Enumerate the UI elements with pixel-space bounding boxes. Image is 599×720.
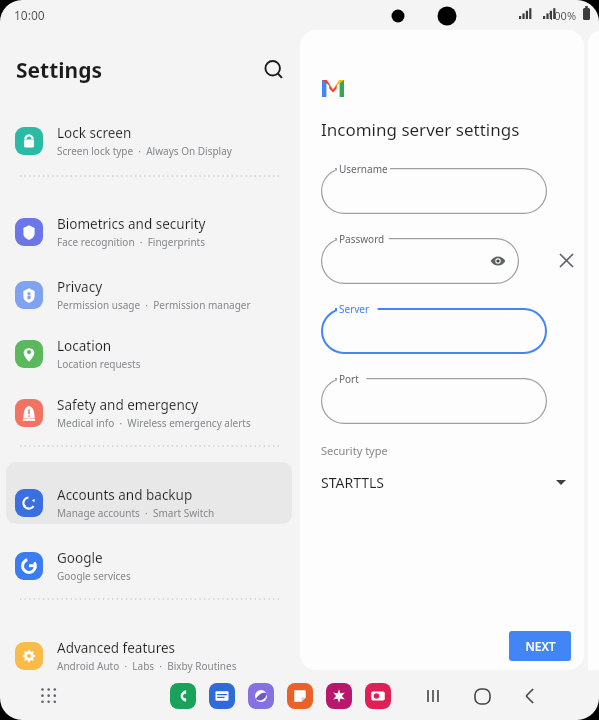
button[interactable]: Back <box>518 684 542 708</box>
button[interactable]: phone <box>170 683 196 709</box>
button[interactable]: Clear password <box>552 246 580 274</box>
staticText: NEXT <box>525 638 556 654</box>
staticText: Medical info · Wireless emergency alerts <box>57 416 251 430</box>
button[interactable]: Advanced features <box>0 625 300 687</box>
button[interactable]: Privacy <box>0 264 300 326</box>
staticText: Incoming server settings <box>321 118 520 141</box>
button[interactable]: net <box>248 683 274 709</box>
button[interactable]: Port <box>321 378 547 424</box>
button[interactable]: cam <box>365 683 391 709</box>
staticText: 100% <box>548 8 577 23</box>
staticText: Security type <box>321 443 388 458</box>
button[interactable]: Password <box>321 238 519 284</box>
staticText: Password <box>339 232 385 246</box>
staticText: Server <box>339 302 370 316</box>
staticText: Settings <box>16 56 103 85</box>
staticText: Manage accounts · Smart Switch <box>57 506 215 520</box>
button[interactable]: Show password <box>487 250 509 272</box>
button[interactable]: Safety and emergency <box>0 382 300 444</box>
staticText: Accounts and backup <box>57 486 193 504</box>
button[interactable]: Username <box>321 168 547 214</box>
staticText: Google <box>57 549 103 567</box>
staticText: Face recognition · Fingerprints <box>57 235 205 249</box>
button[interactable]: Server <box>321 308 547 354</box>
button[interactable]: Apps <box>38 685 60 707</box>
button[interactable]: STARTTLS <box>300 465 584 499</box>
staticText: STARTTLS <box>321 473 385 492</box>
staticText: 10:00 <box>14 7 45 23</box>
button[interactable]: Home <box>470 684 494 708</box>
button[interactable]: msg <box>209 683 235 709</box>
staticText: Port <box>339 372 359 386</box>
button[interactable]: Accounts and backup <box>0 472 300 534</box>
staticText: Safety and emergency <box>57 396 199 414</box>
button[interactable]: NEXT <box>509 631 571 661</box>
staticText: Google services <box>57 569 131 583</box>
button[interactable]: Lock screen <box>0 110 300 172</box>
staticText: Privacy <box>57 278 103 296</box>
staticText: Advanced features <box>57 639 176 657</box>
button[interactable]: Location <box>0 323 300 385</box>
button[interactable]: Biometrics and security <box>0 201 300 263</box>
button[interactable]: Recents <box>422 684 446 708</box>
button[interactable]: store <box>326 683 352 709</box>
staticText: Lock screen <box>57 124 132 142</box>
button[interactable]: Search <box>256 52 292 88</box>
staticText: Location requests <box>57 357 141 371</box>
staticText: Username <box>339 162 388 176</box>
staticText: Location <box>57 337 112 355</box>
staticText: Biometrics and security <box>57 215 206 233</box>
button[interactable]: Google <box>0 535 300 597</box>
staticText: Permission usage · Permission manager <box>57 298 251 312</box>
staticText: Android Auto · Labs · Bixby Routines <box>57 659 237 673</box>
staticText: Screen lock type · Always On Display <box>57 144 232 158</box>
button[interactable]: notes <box>287 683 313 709</box>
